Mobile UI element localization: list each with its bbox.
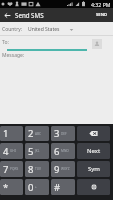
- button[interactable]: 8: [25, 161, 49, 177]
- staticText: To:: [2, 39, 9, 46]
- staticText: *: [3, 181, 9, 194]
- staticText: 4:32 PM: [91, 1, 111, 8]
- staticText: Country:: [2, 26, 23, 33]
- button[interactable]: 3: [51, 126, 75, 141]
- staticText: United States: [28, 26, 60, 33]
- staticText: 9: [54, 163, 60, 176]
- button[interactable]: 2: [25, 126, 49, 141]
- staticText: ABC: [35, 132, 42, 136]
- staticText: #: [54, 181, 61, 194]
- staticText: 8: [28, 163, 34, 176]
- button[interactable]: 0: [25, 179, 49, 195]
- staticText: 3: [54, 127, 60, 140]
- staticText: Send SMS: [15, 11, 44, 19]
- staticText: 0: [28, 181, 34, 194]
- staticText: +: [35, 185, 37, 189]
- staticText: 4: [3, 145, 9, 158]
- button[interactable]: 9: [51, 161, 75, 177]
- button[interactable]: #: [51, 179, 75, 195]
- staticText: 6: [54, 145, 60, 158]
- button[interactable]: Country:: [2, 26, 110, 33]
- button[interactable]: Pick contact: [92, 39, 102, 49]
- button[interactable]: 4: [0, 143, 23, 159]
- staticText: DEF: [61, 132, 67, 136]
- button[interactable]: 6: [51, 143, 75, 159]
- staticText: JKL: [35, 149, 40, 153]
- staticText: 5: [28, 145, 34, 158]
- button[interactable]: Back: [0, 8, 15, 22]
- staticText: TUV: [35, 167, 42, 171]
- button[interactable]: Next: [77, 143, 110, 159]
- button[interactable]: Backspace: [77, 126, 110, 141]
- staticText: 7: [3, 163, 9, 176]
- button[interactable]: Sym: [77, 161, 110, 177]
- staticText: Message:: [2, 52, 25, 59]
- staticText: 2: [28, 127, 34, 140]
- button[interactable]: Keyboard settings: [77, 179, 110, 195]
- button[interactable]: *: [0, 179, 23, 195]
- staticText: MNO: [61, 149, 69, 153]
- staticText: GHI: [10, 149, 16, 153]
- staticText: 1: [3, 127, 9, 140]
- staticText: Sym: [88, 165, 100, 173]
- button[interactable]: 1: [0, 126, 23, 141]
- button[interactable]: 7: [0, 161, 23, 177]
- staticText: Next: [87, 147, 101, 155]
- staticText: SEND: [96, 12, 108, 18]
- staticText: WXYZ: [61, 167, 70, 171]
- staticText: PQRS: [10, 167, 19, 171]
- button[interactable]: 5: [25, 143, 49, 159]
- button[interactable]: SEND: [91, 8, 113, 22]
